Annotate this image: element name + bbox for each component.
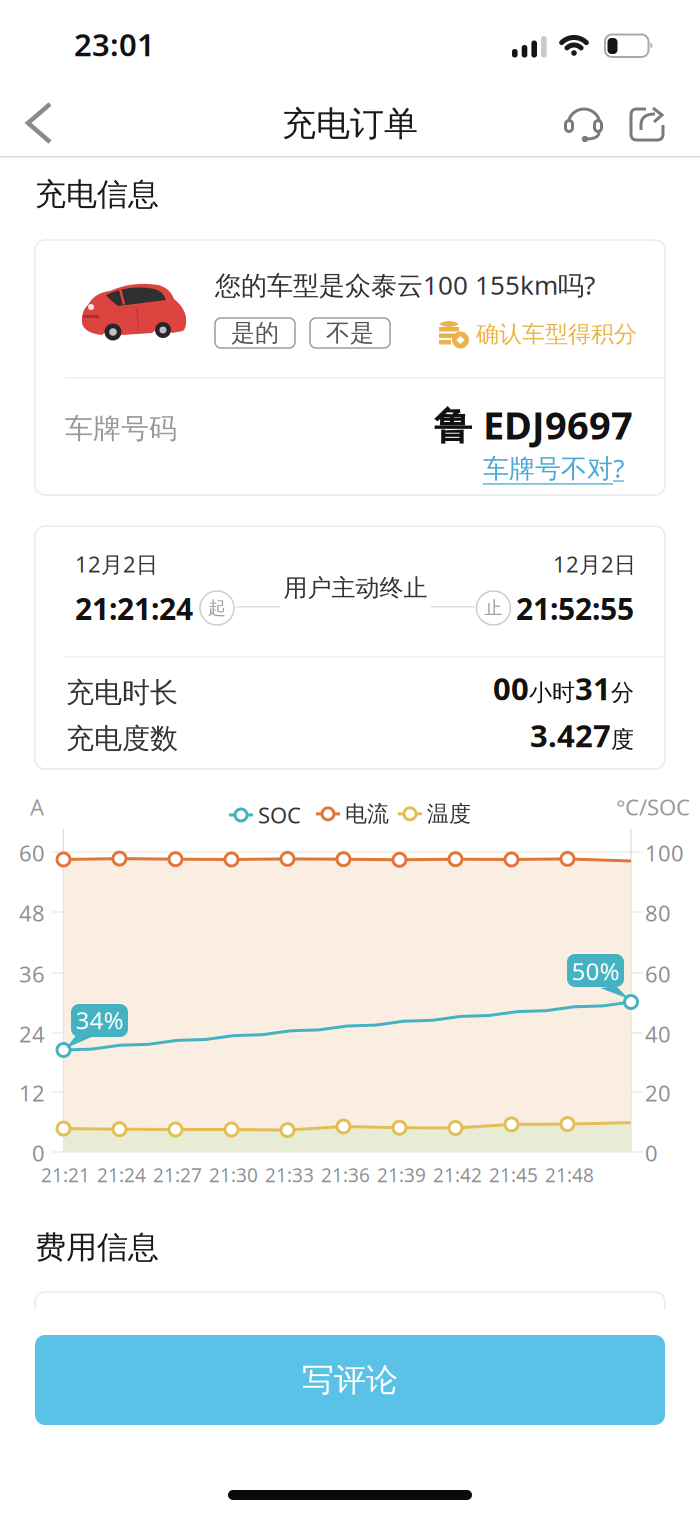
staticText: 电流 (345, 800, 389, 828)
staticText: °C/SOC (616, 792, 690, 822)
staticText: 60 (645, 959, 671, 989)
staticText: 21:21 (41, 1162, 90, 1188)
staticText: 48 (19, 898, 45, 928)
staticText: 12月2日 (75, 549, 158, 579)
staticText: 3.427 (530, 714, 611, 756)
staticText: 您的车型是众泰云100 155km吗? (215, 267, 595, 302)
staticText: 21:39 (377, 1162, 426, 1188)
staticText: 12月2日 (553, 549, 636, 579)
button[interactable]: 车牌号不对? (483, 450, 624, 485)
staticText: 起 (208, 597, 226, 619)
button[interactable]: 是的 (215, 318, 295, 348)
button[interactable]: 不是 (310, 318, 390, 348)
staticText: 21:24 (97, 1162, 146, 1188)
staticText: 费用信息 (35, 1228, 159, 1267)
staticText: 100 (645, 838, 684, 868)
staticText: 止 (484, 597, 502, 619)
staticText: 温度 (427, 800, 471, 828)
staticText: 21:42 (433, 1162, 482, 1188)
staticText: 36 (19, 959, 45, 989)
staticText: 分 (611, 678, 634, 707)
staticText: 21:21:24 (75, 588, 193, 629)
staticText: 21:33 (265, 1162, 314, 1188)
staticText: 60 (19, 838, 45, 868)
staticText: 小时 (529, 678, 575, 707)
staticText: 40 (645, 1019, 671, 1049)
staticText: 用户主动终止 (283, 573, 427, 603)
staticText: 0 (32, 1138, 45, 1168)
staticText: 21:52:55 (516, 588, 634, 629)
staticText: 确认车型得积分 (476, 319, 637, 348)
staticText: 80 (645, 898, 671, 928)
staticText: 鲁 EDJ9697 (434, 399, 633, 451)
staticText: 24 (19, 1019, 45, 1049)
staticText: 21:36 (321, 1162, 370, 1188)
staticText: 20 (645, 1078, 671, 1108)
staticText: 车牌号码 (65, 411, 177, 446)
staticText: 21:30 (209, 1162, 258, 1188)
staticText: 50% (571, 955, 619, 987)
staticText: 31 (575, 667, 611, 709)
button[interactable]: Customer service (561, 101, 605, 145)
staticText: 34% (75, 1004, 123, 1036)
staticText: 写评论 (302, 1360, 398, 1400)
staticText: 充电时长 (66, 675, 178, 710)
staticText: 0 (645, 1138, 658, 1168)
button[interactable]: Back (18, 96, 60, 150)
staticText: 23:01 (74, 23, 155, 65)
staticText: 车牌号不对? (483, 450, 624, 485)
staticText: 度 (611, 725, 634, 754)
staticText: 充电度数 (66, 721, 178, 756)
staticText: 21:27 (153, 1162, 202, 1188)
staticText: 不是 (326, 318, 374, 348)
button[interactable]: Share (625, 101, 669, 145)
staticText: A (30, 792, 44, 822)
staticText: 21:45 (489, 1162, 538, 1188)
button[interactable]: 确认车型得积分 (438, 319, 637, 349)
button[interactable]: 写评论 (35, 1335, 665, 1425)
staticText: 充电订单 (282, 103, 418, 145)
staticText: 00 (493, 667, 529, 709)
staticText: SOC (258, 800, 301, 830)
staticText: 是的 (231, 318, 279, 348)
staticText: 充电信息 (35, 175, 159, 214)
staticText: 21:48 (545, 1162, 594, 1188)
staticText: 12 (19, 1078, 45, 1108)
